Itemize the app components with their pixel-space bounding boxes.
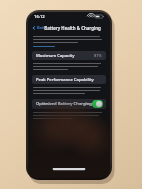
button[interactable]: Optimized Battery Charging toggle, on [92, 100, 103, 108]
staticText: Peak Performance Capability [36, 77, 94, 83]
button[interactable]: Optimized Battery Charging [32, 99, 106, 109]
staticText: Optimized Battery Charging [36, 101, 92, 107]
staticText: 87% [94, 53, 102, 58]
staticText: Maximum Capacity [36, 53, 75, 59]
staticText: Battery Health & Charging [44, 25, 101, 31]
staticText: 16:12 [34, 14, 45, 20]
button[interactable]: Maximum Capacity [32, 51, 106, 60]
button[interactable]: Peak Performance Capability [32, 75, 106, 84]
staticText: Batt [37, 25, 45, 30]
button[interactable]: Back [31, 24, 46, 31]
